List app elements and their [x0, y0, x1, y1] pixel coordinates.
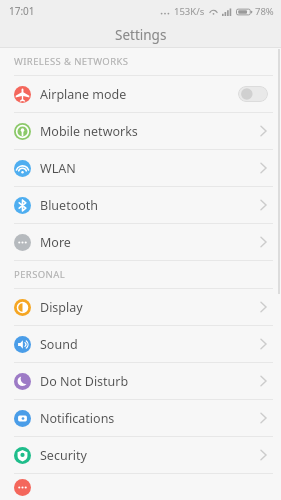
button[interactable]: Notifications [0, 400, 281, 436]
staticText: Display [40, 299, 259, 316]
button[interactable]: Bluetooth [0, 187, 281, 223]
staticText: 78% [255, 5, 274, 18]
staticText: 153K/s [174, 5, 205, 18]
staticText: Airplane mode [40, 86, 238, 103]
staticText: PERSONAL [14, 268, 66, 281]
button[interactable] [0, 474, 281, 500]
staticText: 17:01 [9, 4, 35, 18]
staticText: WIRELESS & NETWORKS [14, 55, 129, 68]
staticText: More [40, 234, 259, 251]
button[interactable]: Security [0, 437, 281, 473]
button[interactable]: More [0, 224, 281, 260]
staticText: Notifications [40, 410, 259, 427]
staticText: Do Not Disturb [40, 373, 259, 390]
staticText: Bluetooth [40, 197, 259, 214]
button[interactable]: Mobile networks [0, 113, 281, 149]
button[interactable]: Airplane mode [0, 76, 281, 112]
button[interactable]: Display [0, 289, 281, 325]
button[interactable]: Sound [0, 326, 281, 362]
staticText: Sound [40, 336, 259, 353]
staticText: Settings [115, 26, 167, 44]
button[interactable]: WLAN [0, 150, 281, 186]
staticText: Security [40, 447, 259, 464]
button[interactable]: Airplane mode [238, 86, 268, 102]
button[interactable]: Do Not Disturb [0, 363, 281, 399]
staticText: Mobile networks [40, 123, 259, 140]
staticText: WLAN [40, 160, 259, 177]
